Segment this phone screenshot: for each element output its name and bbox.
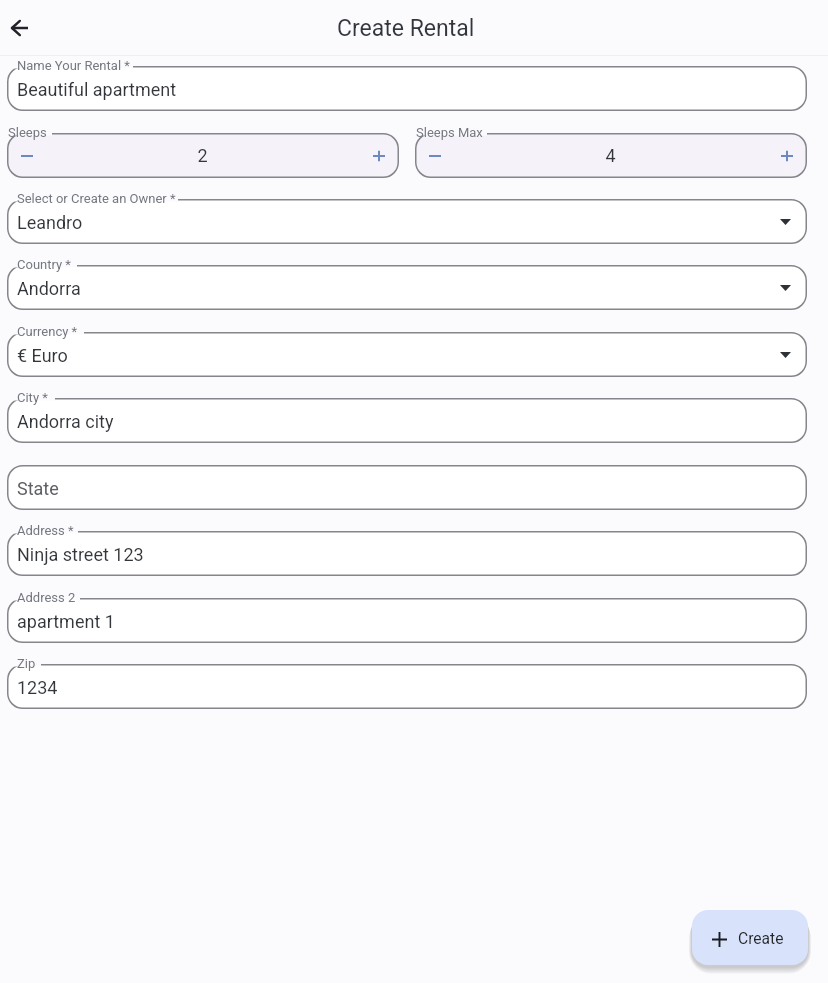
button[interactable]: Decrease Sleeps xyxy=(7,133,47,178)
staticText: State xyxy=(17,478,59,499)
staticText: Address * xyxy=(17,523,74,538)
staticText: Address 2 xyxy=(17,590,76,605)
staticText: Sleeps Max xyxy=(416,125,483,140)
staticText: 2 xyxy=(47,145,358,166)
staticText: City * xyxy=(17,390,48,405)
staticText: apartment 1 xyxy=(17,611,115,632)
staticText: Create xyxy=(738,930,784,948)
staticText: 4 xyxy=(455,145,766,166)
button[interactable]: Increase Sleeps xyxy=(358,133,399,178)
staticText: Name Your Rental * xyxy=(17,58,130,73)
staticText: Ninja street 123 xyxy=(17,544,144,565)
button[interactable]: Andorra city xyxy=(7,398,807,443)
staticText: Country * xyxy=(17,257,71,272)
button[interactable]: apartment 1 xyxy=(7,598,807,643)
staticText: Select or Create an Owner * xyxy=(17,191,176,206)
button[interactable]: 1234 xyxy=(7,664,807,709)
button[interactable]: Increase Sleeps Max xyxy=(766,133,807,178)
staticText: Create Rental xyxy=(337,15,475,42)
staticText: 1234 xyxy=(17,677,58,698)
button[interactable]: Ninja street 123 xyxy=(7,531,807,576)
staticText: Andorra city xyxy=(17,411,114,432)
staticText: Zip xyxy=(17,656,36,671)
staticText: € Euro xyxy=(17,345,68,366)
button[interactable]: Create xyxy=(692,910,808,965)
button[interactable]: Beautiful apartment xyxy=(7,66,807,111)
staticText: Leandro xyxy=(17,212,83,233)
button[interactable]: Decrease Sleeps Max xyxy=(415,133,455,178)
button[interactable]: State xyxy=(7,465,807,510)
staticText: Sleeps xyxy=(8,125,47,140)
staticText: Beautiful apartment xyxy=(17,79,177,100)
button[interactable]: Leandro xyxy=(7,199,807,244)
button[interactable]: Andorra xyxy=(7,265,807,310)
button[interactable]: Back xyxy=(0,4,43,52)
staticText: Currency * xyxy=(17,324,78,339)
staticText: Andorra xyxy=(17,278,81,299)
button[interactable]: € Euro xyxy=(7,332,807,377)
